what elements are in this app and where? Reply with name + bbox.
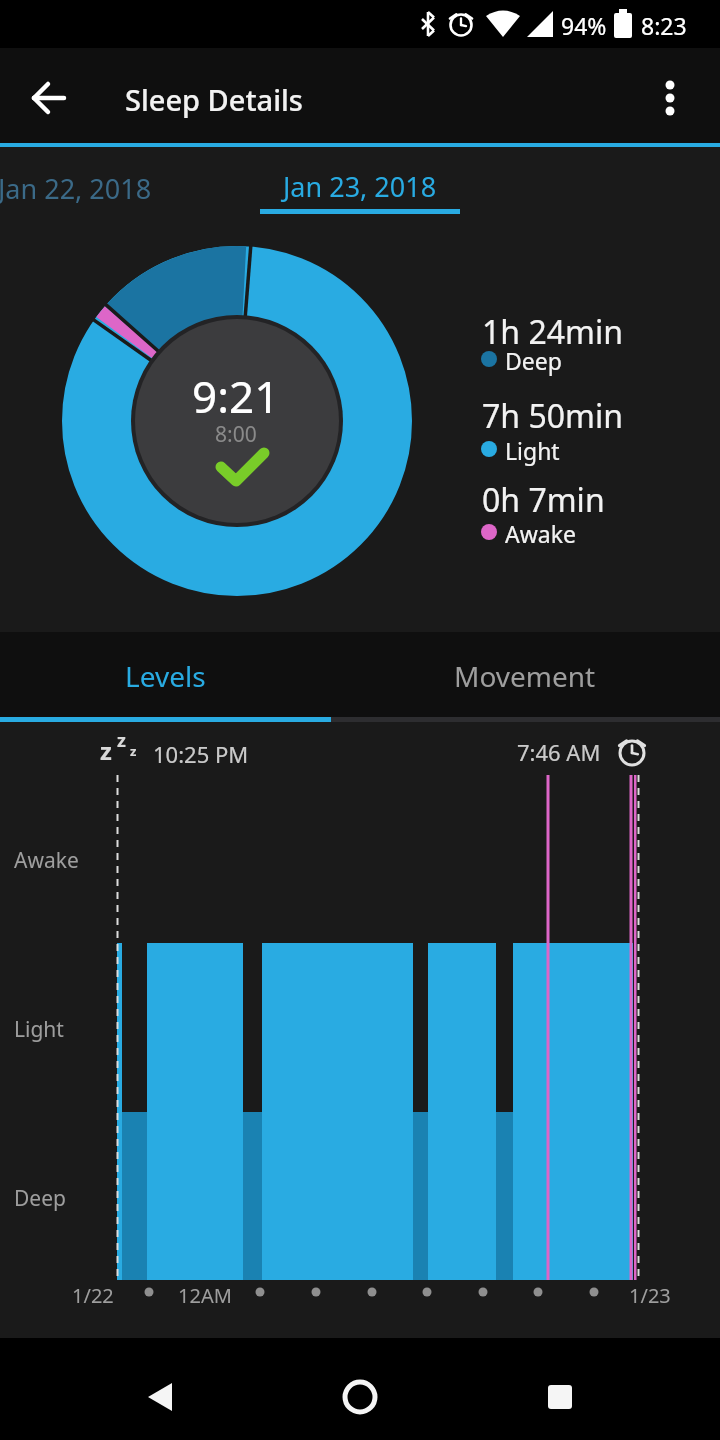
staticText: Light [505,435,560,466]
button[interactable] [0,632,331,722]
button[interactable] [330,1367,390,1427]
staticText: 94% [561,10,607,41]
staticText: 7h 50min [482,394,623,438]
staticText: 1/22 [72,1282,114,1309]
button[interactable] [20,78,76,118]
button[interactable] [331,632,720,722]
staticText: 8:23 [641,10,687,41]
button[interactable] [130,1367,190,1427]
staticText: Deep [505,345,562,376]
staticText: 1h 24min [482,310,623,354]
staticText: Light [14,1015,64,1044]
staticText: 12AM [178,1282,232,1309]
button[interactable] [530,1367,590,1427]
staticText: z [130,742,137,760]
staticText: Awake [505,518,576,549]
staticText: Jan 23, 2018 [283,168,437,205]
staticText: Awake [14,846,79,875]
staticText: 8:00 [215,420,257,449]
staticText: Movement [454,657,596,695]
staticText: 0h 7min [482,478,605,522]
staticText: 9:21 [192,366,280,426]
button[interactable] [0,150,230,215]
staticText: 7:46 AM [517,737,601,767]
staticText: Jan 22, 2018 [0,170,152,207]
staticText: 10:25 PM [153,739,249,769]
staticText: 1/23 [629,1282,671,1309]
staticText: z [100,734,112,767]
staticText: Deep [14,1184,66,1213]
button[interactable] [260,150,460,215]
button[interactable] [646,72,694,124]
staticText: Sleep Details [125,80,303,119]
staticText: z [117,728,126,753]
staticText: Levels [125,657,206,695]
